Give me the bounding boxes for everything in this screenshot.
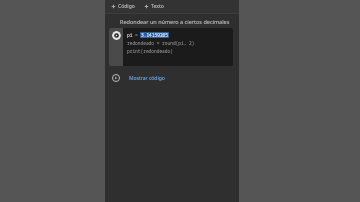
- staticText: redondeado = round(pi, 2): [127, 40, 195, 46]
- staticText: pi: [127, 32, 133, 38]
- staticText: print(redondeado): [127, 48, 173, 54]
- button[interactable]: Ejecutar celda: [109, 28, 233, 66]
- button[interactable]: Texto: [142, 2, 166, 11]
- button[interactable]: Código: [109, 2, 137, 11]
- staticText: =: [135, 32, 138, 38]
- staticText: 3.14159265: [141, 32, 168, 38]
- staticText: Redondear un número a ciertos decimales: [120, 18, 230, 25]
- staticText: Código: [118, 3, 135, 10]
- staticText: Texto: [151, 3, 164, 10]
- staticText: Mostrar código: [129, 75, 165, 82]
- button[interactable]: Mostrar código: [109, 72, 233, 84]
- button[interactable]: Ejecutar celda: [112, 31, 121, 40]
